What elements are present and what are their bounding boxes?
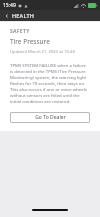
staticText: TPMS SYSTEM FAILURE when a failure is de… <box>10 62 90 104</box>
staticText: Updated March 21, 2022 at 16:48 <box>10 49 75 55</box>
staticText: Go To Dealer <box>35 114 66 121</box>
staticText: Tire Pressure <box>10 37 50 46</box>
button[interactable]: Go To Dealer <box>10 112 90 123</box>
staticText: 15:49 <box>3 2 16 9</box>
staticText: HEALTH <box>12 12 35 19</box>
staticText: SAFETY <box>10 28 30 35</box>
button[interactable]: Back <box>3 12 11 20</box>
